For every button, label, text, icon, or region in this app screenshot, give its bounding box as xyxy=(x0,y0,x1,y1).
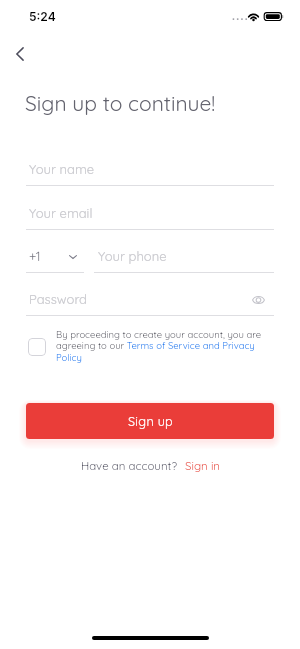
staticText: 5:24 xyxy=(29,9,56,24)
staticText: Sign in xyxy=(185,458,220,472)
staticText: Your name xyxy=(29,161,95,177)
button[interactable]: Select country code xyxy=(64,248,82,266)
button[interactable]: Back xyxy=(3,37,37,71)
staticText: Password xyxy=(29,291,87,307)
staticText: By proceeding to create your account, yo… xyxy=(56,328,264,364)
staticText: Your email xyxy=(29,205,93,221)
button[interactable]: Show password xyxy=(247,289,269,311)
button[interactable]: Sign in xyxy=(185,458,220,472)
button[interactable]: Accept terms and conditions xyxy=(28,338,46,356)
staticText: Sign up xyxy=(128,413,173,429)
staticText: Your phone xyxy=(98,248,167,264)
staticText: Have an account? xyxy=(81,458,178,472)
staticText: Sign up to continue! xyxy=(25,90,216,116)
staticText: +1 xyxy=(29,248,41,264)
button[interactable]: Sign up xyxy=(26,403,274,439)
